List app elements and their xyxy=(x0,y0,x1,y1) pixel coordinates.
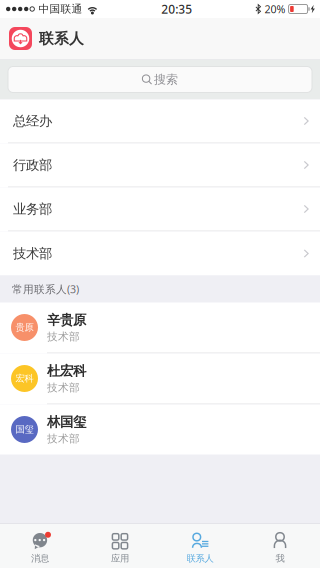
staticText: 技术部 xyxy=(47,432,80,445)
staticText: 总经办 xyxy=(13,113,52,129)
staticText: 消息 xyxy=(31,553,49,564)
staticText: 技术部 xyxy=(47,330,80,343)
staticText: 20% xyxy=(265,2,286,16)
button[interactable]: 联系人 xyxy=(160,524,240,568)
button[interactable]: 搜索 xyxy=(0,59,320,99)
staticText: 技术部 xyxy=(47,381,80,394)
button[interactable]: 应用 xyxy=(80,524,160,568)
staticText: 国玺 xyxy=(15,424,33,435)
staticText: 宏科 xyxy=(15,373,33,384)
staticText: 业务部 xyxy=(13,201,52,217)
staticText: 20:35 xyxy=(161,1,192,17)
staticText: 贵原 xyxy=(15,322,33,333)
button[interactable]: 行政部 xyxy=(0,143,320,187)
staticText: 搜索 xyxy=(154,72,178,87)
staticText: 中国联通 xyxy=(38,2,82,15)
button[interactable]: 消息 xyxy=(0,524,80,568)
staticText: 联系人 xyxy=(186,553,213,564)
staticText: 行政部 xyxy=(13,157,52,173)
button[interactable]: 总经办 xyxy=(0,99,320,143)
staticText: 联系人 xyxy=(39,29,84,47)
staticText: 应用 xyxy=(111,553,129,564)
staticText: 技术部 xyxy=(13,245,52,262)
button[interactable]: 业务部 xyxy=(0,187,320,231)
button[interactable]: 宏科 xyxy=(0,353,320,404)
button[interactable]: App xyxy=(0,27,32,50)
staticText: 林国玺 xyxy=(47,414,86,430)
button[interactable]: 我 xyxy=(240,524,320,568)
button[interactable]: 贵原 xyxy=(0,302,320,353)
staticText: 我 xyxy=(275,553,284,564)
staticText: 辛贵原 xyxy=(47,312,86,328)
button[interactable]: 技术部 xyxy=(0,231,320,275)
button[interactable]: 国玺 xyxy=(0,404,320,454)
staticText: 杜宏科 xyxy=(47,363,86,379)
staticText: 常用联系人(3) xyxy=(12,282,79,296)
